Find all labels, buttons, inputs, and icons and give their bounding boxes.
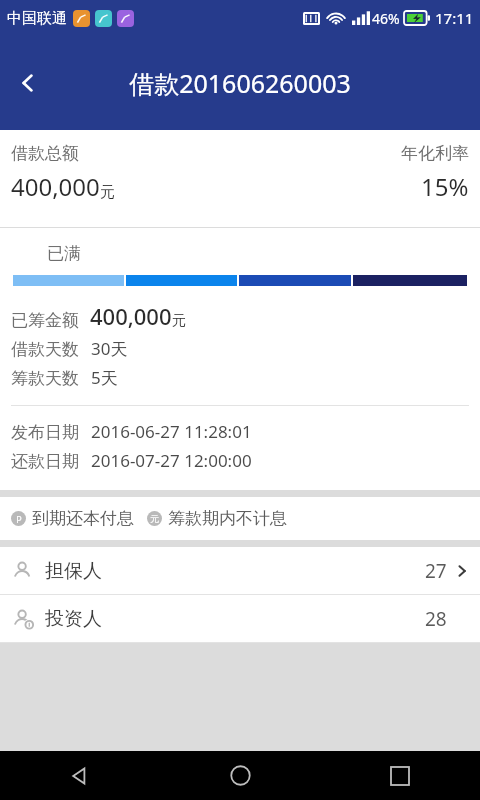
staticText: 30天 xyxy=(91,337,128,360)
staticText: 投资人 xyxy=(45,607,102,631)
staticText: 15% xyxy=(421,170,469,203)
button[interactable]: Recent apps xyxy=(320,751,480,800)
staticText: 元 xyxy=(100,183,115,202)
button[interactable]: 投资人 xyxy=(0,595,480,642)
staticText: 已满 xyxy=(47,243,81,264)
staticText: 年化利率 xyxy=(401,143,469,164)
staticText: 2016-07-27 12:00:00 xyxy=(91,449,252,472)
button[interactable]: Back xyxy=(0,751,160,800)
staticText: 5天 xyxy=(91,366,118,389)
staticText: 中国联通 xyxy=(7,9,67,28)
staticText: 借款201606260003 xyxy=(129,66,351,100)
staticText: 28 xyxy=(425,606,447,632)
button[interactable]: Home xyxy=(160,751,320,800)
staticText: 27 xyxy=(425,558,447,584)
staticText: 发布日期 xyxy=(11,422,79,443)
staticText: 到期还本付息 xyxy=(32,508,134,529)
button[interactable]: 担保人 xyxy=(0,547,480,594)
staticText: 还款日期 xyxy=(11,451,79,472)
staticText: 17:11 xyxy=(435,8,474,28)
staticText: 担保人 xyxy=(45,559,102,583)
staticText: 筹款天数 xyxy=(11,368,79,389)
staticText: P xyxy=(16,513,22,525)
staticText: 已筹金额 xyxy=(11,310,79,331)
staticText: 元 xyxy=(150,513,159,524)
staticText: 元 xyxy=(172,312,186,330)
staticText: 筹款期内不计息 xyxy=(168,508,287,529)
staticText: 借款天数 xyxy=(11,339,79,360)
staticText: 400,000 xyxy=(11,170,100,203)
staticText: 借款总额 xyxy=(11,143,79,164)
staticText: 400,000 xyxy=(90,301,172,331)
button[interactable]: Back xyxy=(0,55,56,111)
staticText: 46% xyxy=(372,9,400,28)
staticText: 2016-06-27 11:28:01 xyxy=(91,420,252,443)
